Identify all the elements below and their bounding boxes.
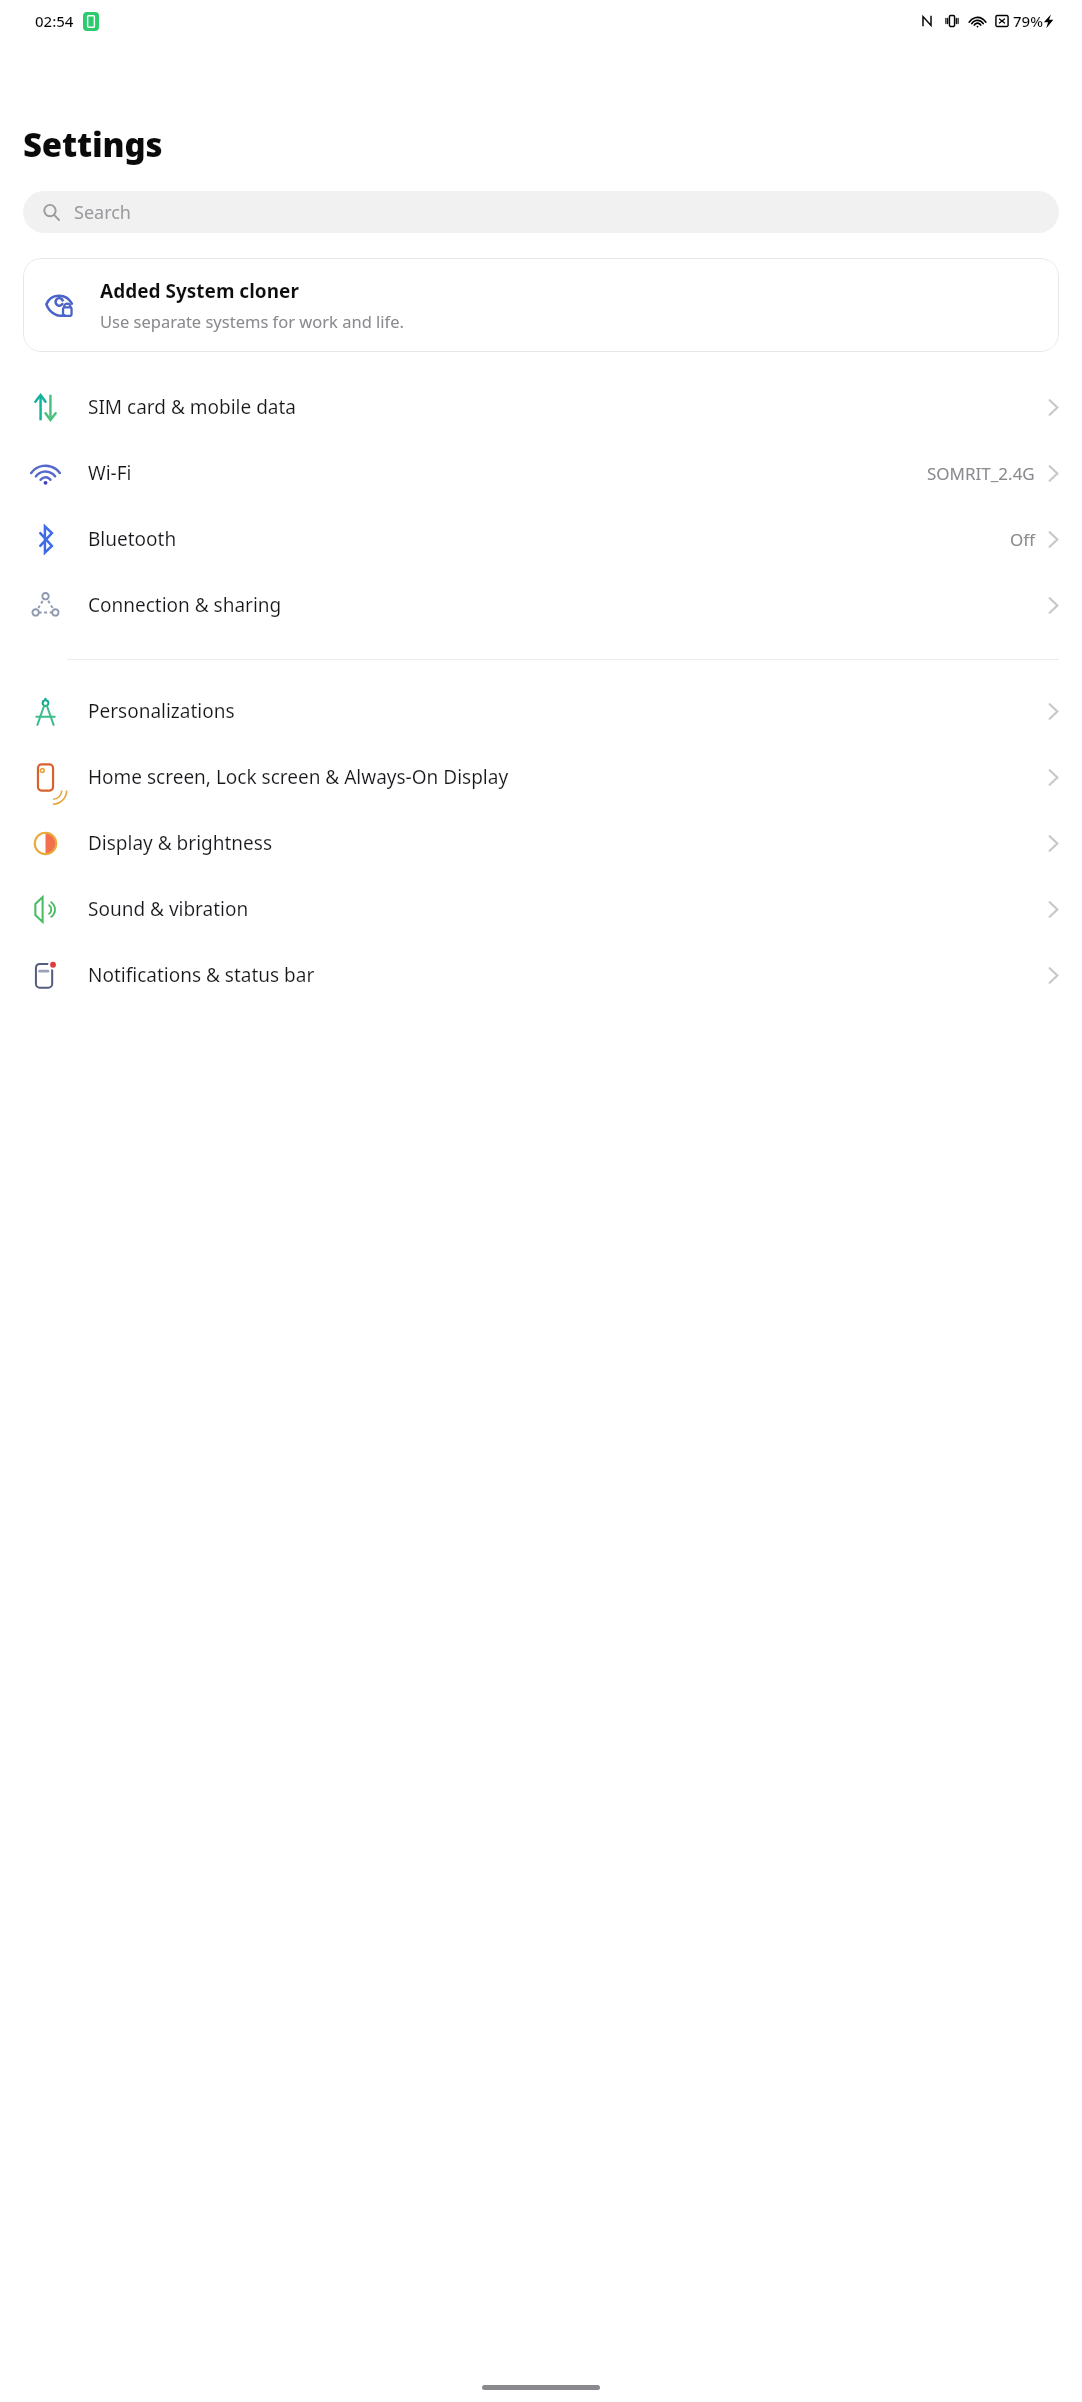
other: Open Personalizations (1048, 702, 1059, 721)
staticText: 79% (1013, 11, 1043, 31)
button[interactable]: Home screen, Lock screen & Always-On Dis… (0, 744, 1082, 810)
button[interactable]: Display & brightness (0, 810, 1082, 876)
button[interactable]: Connection & sharing (0, 572, 1082, 638)
staticText: Personalizations (88, 698, 1038, 724)
staticText: SOMRIT_2.4G (927, 462, 1035, 485)
staticText: Home screen, Lock screen & Always-On Dis… (88, 764, 1038, 790)
other: Open Display & brightness (1048, 834, 1059, 853)
staticText: SIM card & mobile data (88, 394, 1038, 420)
button[interactable]: SIM card & mobile data (0, 374, 1082, 440)
staticText: Sound & vibration (88, 896, 1038, 922)
staticText: Bluetooth (88, 526, 1000, 552)
button[interactable]: Bluetooth (0, 506, 1082, 572)
staticText: Search (74, 200, 131, 225)
staticText: Notifications & status bar (88, 962, 1038, 988)
other: Open Sound & vibration (1048, 900, 1059, 919)
staticText: Connection & sharing (88, 592, 1038, 618)
staticText: Use separate systems for work and life. (100, 310, 405, 332)
button[interactable]: Search (23, 191, 1059, 233)
button[interactable]: Notifications & status bar (0, 942, 1082, 1008)
button[interactable]: Personalizations (0, 678, 1082, 744)
staticText: Settings (23, 122, 163, 167)
staticText: Off (1010, 528, 1035, 551)
button[interactable]: Wi-Fi (0, 440, 1082, 506)
staticText: Display & brightness (88, 830, 1038, 856)
other: Open SIM card & mobile data (1048, 398, 1059, 417)
other: Open Bluetooth (1048, 530, 1059, 549)
staticText: 02:54 (35, 11, 74, 31)
staticText: Added System cloner (100, 278, 299, 304)
other: Open Notifications & status bar (1048, 966, 1059, 985)
staticText: Wi-Fi (88, 460, 917, 486)
button[interactable]: Sound & vibration (0, 876, 1082, 942)
button[interactable]: Added System cloner (23, 258, 1059, 352)
other: Open Home screen, Lock screen & Always-O… (1048, 768, 1059, 787)
other: Open Connection & sharing (1048, 596, 1059, 615)
other: Open Wi-Fi (1048, 464, 1059, 483)
